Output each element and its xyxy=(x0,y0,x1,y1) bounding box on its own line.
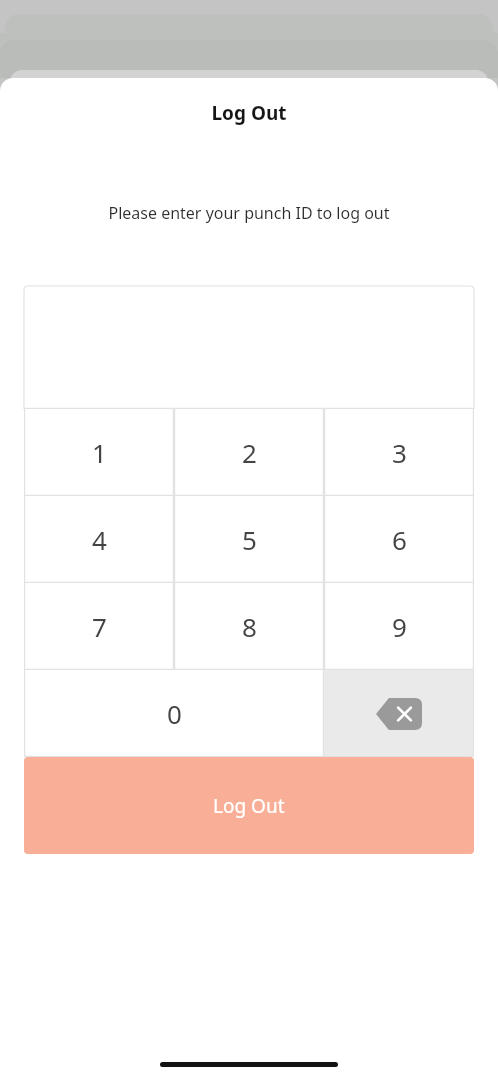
button[interactable]: 2 xyxy=(174,409,324,496)
button[interactable]: 7 xyxy=(24,583,174,670)
staticText: 6 xyxy=(392,522,407,557)
staticText: 0 xyxy=(167,696,182,731)
button[interactable]: 0 xyxy=(24,670,324,757)
staticText: Log Out xyxy=(213,793,285,819)
button[interactable]: 8 xyxy=(174,583,324,670)
button[interactable]: 5 xyxy=(174,496,324,583)
button[interactable]: 3 xyxy=(324,409,474,496)
staticText: 1 xyxy=(92,435,107,470)
staticText: 2 xyxy=(242,435,257,470)
staticText: 7 xyxy=(92,609,107,644)
staticText: 3 xyxy=(392,435,407,470)
button[interactable]: 1 xyxy=(24,409,174,496)
staticText: 4 xyxy=(92,522,107,557)
staticText: Please enter your punch ID to log out xyxy=(108,202,390,224)
staticText: 8 xyxy=(242,609,257,644)
staticText: 5 xyxy=(242,522,257,557)
button[interactable]: 9 xyxy=(324,583,474,670)
staticText: Log Out xyxy=(211,100,287,126)
staticText: 9 xyxy=(392,609,407,644)
button[interactable]: Log Out xyxy=(24,757,474,854)
button[interactable]: Backspace xyxy=(324,670,474,757)
button[interactable]: 6 xyxy=(324,496,474,583)
button[interactable]: 4 xyxy=(24,496,174,583)
